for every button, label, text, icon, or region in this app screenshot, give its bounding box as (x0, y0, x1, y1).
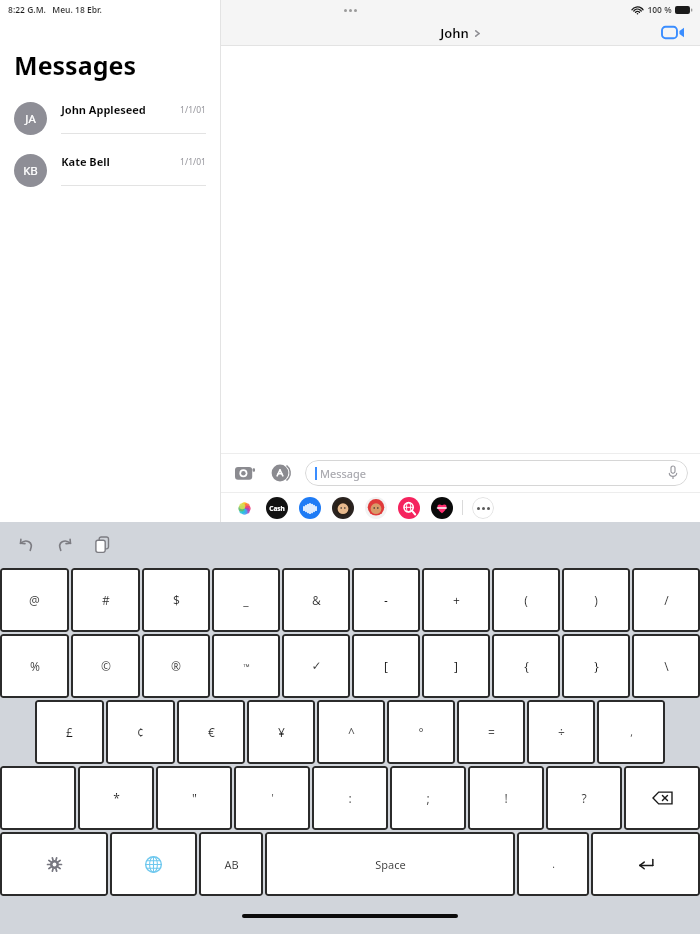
staticText: $ (173, 592, 180, 608)
button[interactable]: . (517, 832, 589, 896)
button[interactable]: Undo (14, 533, 38, 557)
staticText: - (384, 592, 388, 608)
staticText: AB (224, 857, 239, 872)
button[interactable]: ✓ (282, 634, 350, 698)
button[interactable]: \ (632, 634, 700, 698)
button[interactable]: iMessage app (431, 497, 453, 519)
staticText: & (312, 592, 321, 608)
staticText: ] (454, 658, 458, 674)
button[interactable]: / (632, 568, 700, 632)
staticText: [ (384, 658, 388, 674)
button[interactable]: ¢ (106, 700, 175, 764)
staticText: @ (29, 592, 40, 608)
button[interactable]: ° (387, 700, 455, 764)
button[interactable]: , (597, 700, 665, 764)
staticText: % (30, 658, 40, 674)
button[interactable]: iMessage app (398, 497, 420, 519)
button[interactable]: Return (591, 832, 700, 896)
staticText: Messages (14, 48, 136, 82)
staticText: ^ (348, 724, 355, 740)
button[interactable]: ] (422, 634, 490, 698)
staticText: ✓ (311, 659, 322, 673)
button[interactable]: " (156, 766, 232, 830)
staticText: © (101, 658, 111, 674)
staticText: ¥ (278, 724, 285, 740)
button[interactable]: { (492, 634, 560, 698)
button[interactable]: ( (492, 568, 560, 632)
button[interactable]: Redo (52, 533, 76, 557)
button[interactable]: $ (142, 568, 210, 632)
button[interactable]: * (78, 766, 154, 830)
button[interactable]: ' (234, 766, 310, 830)
button[interactable]: # (71, 568, 140, 632)
button[interactable]: Message (305, 460, 688, 486)
staticText: : (348, 790, 352, 806)
staticText: + (453, 592, 460, 608)
button[interactable]: } (562, 634, 630, 698)
staticText: KB (23, 163, 38, 179)
staticText: ( (524, 592, 528, 608)
button[interactable]: JA (0, 92, 220, 144)
button[interactable]: Switch keyboard language (110, 832, 197, 896)
button[interactable]: ? (546, 766, 622, 830)
button[interactable]: ! (468, 766, 544, 830)
staticText: ° (418, 724, 424, 740)
staticText: Cash (269, 504, 285, 513)
staticText: = (488, 724, 495, 740)
button[interactable]: More apps (472, 497, 494, 519)
staticText: , (630, 725, 633, 739)
button[interactable]: Emoji (0, 832, 108, 896)
button[interactable]: Camera (233, 461, 257, 485)
staticText: Space (375, 857, 406, 872)
staticText: " (192, 790, 197, 806)
button[interactable]: iMessage app (299, 497, 321, 519)
button[interactable]: @ (0, 568, 69, 632)
staticText: Meu. 18 Ebr. (52, 4, 102, 16)
button[interactable]: © (71, 634, 140, 698)
button[interactable]: Backspace (624, 766, 700, 830)
button[interactable]: FaceTime video call (660, 20, 686, 45)
button[interactable]: John (440, 24, 481, 42)
staticText: € (208, 724, 215, 740)
button[interactable]: KB (0, 144, 220, 196)
button[interactable]: iMessage app (233, 497, 255, 519)
button[interactable]: ^ (317, 700, 385, 764)
button[interactable]: iMessage app (365, 497, 387, 519)
staticText: ™ (243, 661, 250, 672)
staticText: { (524, 658, 529, 674)
button[interactable]: AB (199, 832, 263, 896)
button[interactable]: ) (562, 568, 630, 632)
button[interactable]: % (0, 634, 69, 698)
staticText: } (594, 658, 599, 674)
button[interactable]: - (352, 568, 420, 632)
staticText: ' (271, 791, 274, 805)
button[interactable]: + (422, 568, 490, 632)
staticText: . (552, 857, 555, 871)
button[interactable]: & (282, 568, 350, 632)
button[interactable]: ® (142, 634, 210, 698)
button[interactable]: Space (265, 832, 515, 896)
staticText: ÷ (558, 724, 565, 740)
staticText: _ (243, 592, 249, 608)
button[interactable]: ™ (212, 634, 280, 698)
button[interactable]: € (177, 700, 245, 764)
staticText: ; (426, 790, 430, 806)
button[interactable]: ÷ (527, 700, 595, 764)
staticText: John (440, 24, 469, 42)
button[interactable]: ¥ (247, 700, 315, 764)
button[interactable]: : (312, 766, 388, 830)
staticText: / (664, 592, 669, 608)
button[interactable]: £ (35, 700, 104, 764)
staticText: \ (664, 658, 669, 674)
button[interactable]: Paste (90, 533, 114, 557)
button[interactable]: iMessage app (266, 497, 288, 519)
button[interactable]: App Store (269, 461, 293, 485)
button[interactable]: iMessage app (332, 497, 354, 519)
button[interactable]: _ (212, 568, 280, 632)
button[interactable]: = (457, 700, 525, 764)
staticText: Kate Bell (61, 154, 110, 169)
button[interactable] (0, 766, 76, 830)
button[interactable]: [ (352, 634, 420, 698)
button[interactable]: ; (390, 766, 466, 830)
staticText: 1/1/01 (180, 156, 206, 168)
